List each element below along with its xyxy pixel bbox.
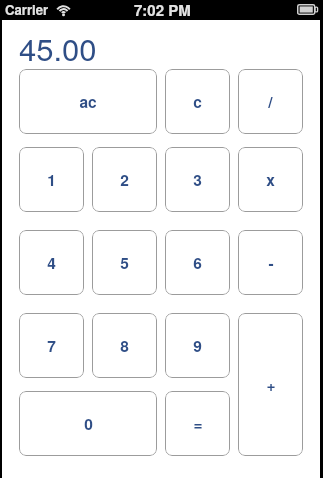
- staticText: 0: [84, 413, 93, 435]
- button[interactable]: 0: [19, 391, 157, 456]
- staticText: 7: [47, 335, 56, 357]
- staticText: 45.00: [19, 25, 97, 69]
- button[interactable]: =: [165, 391, 230, 456]
- staticText: +: [266, 374, 276, 396]
- staticText: 7:02 PM: [134, 0, 191, 19]
- staticText: x: [266, 169, 275, 191]
- other: Wi-Fi signal: [55, 3, 72, 15]
- staticText: 1: [47, 169, 56, 191]
- staticText: Carrier: [5, 0, 49, 19]
- button[interactable]: ac: [19, 69, 157, 134]
- staticText: 3: [193, 169, 202, 191]
- button[interactable]: 7: [19, 313, 84, 378]
- button[interactable]: 8: [92, 313, 157, 378]
- staticText: 2: [120, 169, 129, 191]
- button[interactable]: c: [165, 69, 230, 134]
- staticText: =: [193, 413, 203, 435]
- button[interactable]: -: [238, 230, 303, 295]
- button[interactable]: 9: [165, 313, 230, 378]
- staticText: c: [193, 91, 202, 113]
- staticText: 8: [120, 335, 129, 357]
- button[interactable]: 2: [92, 147, 157, 212]
- button[interactable]: 3: [165, 147, 230, 212]
- other: Battery: [297, 4, 318, 15]
- button[interactable]: /: [238, 69, 303, 134]
- staticText: 4: [47, 252, 56, 274]
- staticText: 6: [193, 252, 202, 274]
- button[interactable]: 5: [92, 230, 157, 295]
- staticText: ac: [79, 91, 97, 113]
- button[interactable]: +: [238, 313, 303, 456]
- staticText: -: [268, 252, 274, 274]
- staticText: /: [268, 91, 273, 113]
- staticText: 9: [193, 335, 202, 357]
- staticText: 5: [120, 252, 129, 274]
- button[interactable]: 1: [19, 147, 84, 212]
- button[interactable]: 4: [19, 230, 84, 295]
- button[interactable]: 6: [165, 230, 230, 295]
- button[interactable]: x: [238, 147, 303, 212]
